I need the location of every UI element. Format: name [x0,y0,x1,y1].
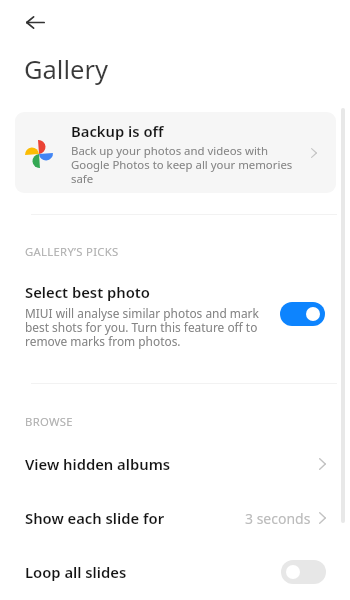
button[interactable]: Select best photo [0,272,350,358]
staticText: GALLERY’S PICKS [25,244,119,259]
staticText: Gallery [24,52,108,87]
button[interactable]: Disabled [281,560,326,584]
button[interactable]: View hidden albums [0,437,350,491]
staticText: MIUI will analyse similar photos and mar… [25,305,268,350]
staticText: 3 seconds [245,509,311,528]
button[interactable]: Show each slide for [0,491,350,545]
button[interactable]: Back [19,6,51,38]
staticText: View hidden albums [25,454,319,474]
button[interactable]: Loop all slides [0,545,350,599]
staticText: BROWSE [25,414,73,429]
staticText: Show each slide for [25,508,245,528]
button[interactable]: Backup is off [15,112,336,193]
staticText: Back up your photos and videos with Goog… [71,143,303,186]
staticText: Backup is off [71,121,164,141]
staticText: Select best photo [25,282,150,302]
staticText: Loop all slides [25,562,281,582]
button[interactable]: Enabled [280,302,325,326]
